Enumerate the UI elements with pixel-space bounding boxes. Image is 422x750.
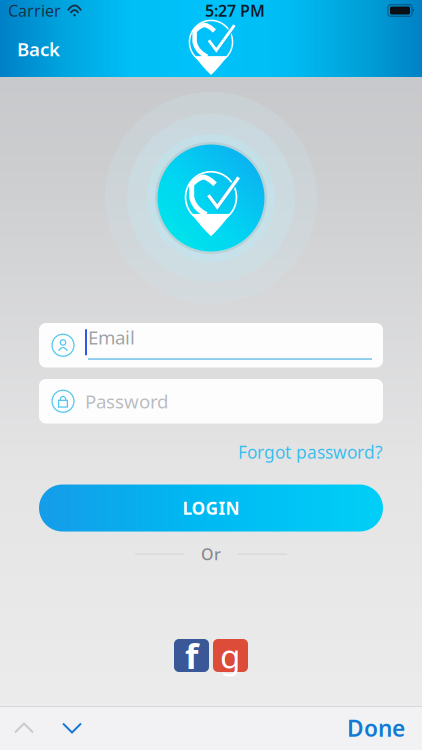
button[interactable]: Forgot password?: [238, 435, 383, 468]
button[interactable]: Sign in with Google: [213, 639, 248, 672]
staticText: g: [220, 633, 241, 678]
button[interactable]: LOGIN: [0, 484, 422, 531]
button[interactable]: Sign in with Facebook: [174, 639, 209, 672]
staticText: Or: [201, 543, 221, 565]
staticText: f: [185, 632, 198, 678]
button[interactable]: Previous field: [0, 706, 48, 750]
staticText: Email: [88, 325, 135, 350]
staticText: Password: [85, 389, 168, 414]
button[interactable]: Next field: [48, 706, 96, 750]
staticText: Back: [17, 37, 60, 61]
staticText: Done: [347, 713, 405, 743]
staticText: Forgot password?: [238, 440, 383, 463]
staticText: 5:27 PM: [205, 0, 265, 21]
staticText: LOGIN: [182, 496, 239, 519]
button[interactable]: Done: [330, 706, 422, 750]
button[interactable]: Back: [0, 27, 72, 71]
staticText: Carrier: [8, 0, 61, 21]
